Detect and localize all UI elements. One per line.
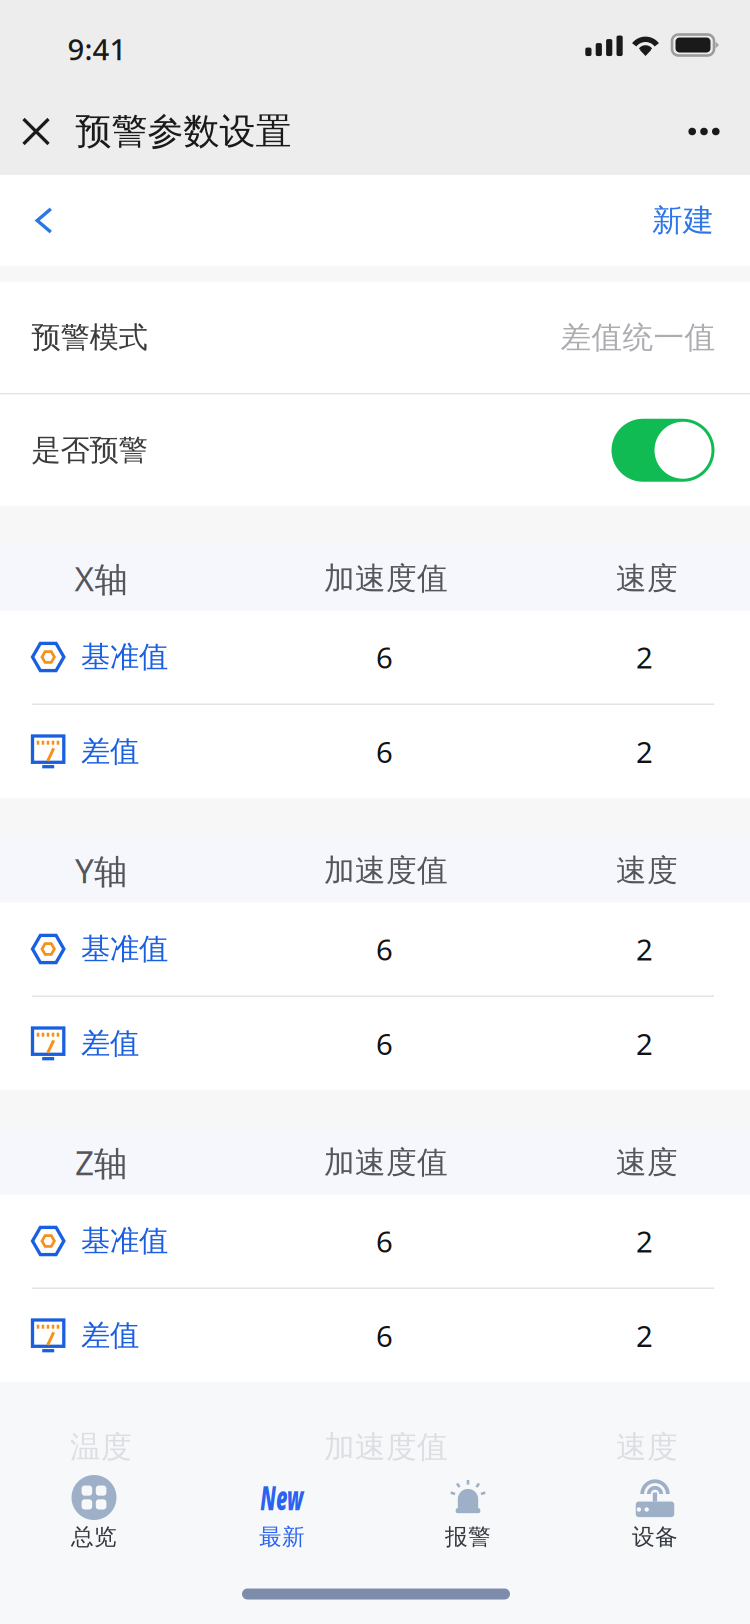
staticText: 2 [636,1316,653,1355]
staticText: 加速度值 [324,560,448,597]
staticText: 基准值 [81,931,168,967]
staticText: 总览 [71,1523,117,1551]
staticText: 2 [636,1024,653,1063]
staticText: 2 [636,732,653,771]
staticText: 速度 [616,560,678,597]
staticText: 最新 [259,1523,305,1551]
button[interactable]: 差值 [0,705,750,798]
staticText: 新建 [652,202,714,239]
staticText: 预警模式 [31,319,147,355]
staticText: 6 [376,637,393,676]
staticText: 加速度值 [324,1428,448,1466]
staticText: 加速度值 [324,1144,448,1181]
staticText: 速度 [616,1144,678,1181]
button[interactable]: 差值 [0,997,750,1090]
staticText: 设备 [632,1523,678,1551]
staticText: 差值 [81,1025,139,1061]
staticText: 9:41 [67,29,126,68]
staticText: 2 [636,637,653,676]
staticText: 基准值 [81,639,168,675]
button[interactable]: 新建 [623,175,743,266]
button[interactable]: 更多 [649,88,750,175]
button[interactable]: 是否预警开关 [611,419,714,482]
button[interactable]: 基准值 [0,1194,750,1287]
button[interactable]: 关闭 [0,88,74,175]
staticText: 2 [636,1221,653,1260]
staticText: 6 [376,1221,393,1260]
staticText: 是否预警 [31,432,147,468]
button[interactable]: 预警模式 [0,282,750,393]
button[interactable]: 设备 [561,1467,748,1559]
staticText: 6 [376,1316,393,1355]
staticText: 6 [376,929,393,968]
staticText: New [258,1483,305,1512]
button[interactable]: 基准值 [0,902,750,995]
button[interactable]: 报警 [374,1467,561,1559]
staticText: 6 [376,732,393,771]
staticText: 报警 [445,1523,491,1551]
staticText: 速度 [616,852,678,889]
button[interactable]: 返回 [0,175,88,266]
button[interactable]: 基准值 [0,610,750,703]
staticText: Y轴 [75,848,127,893]
staticText: Z轴 [75,1140,127,1185]
staticText: 2 [636,929,653,968]
staticText: 加速度值 [324,852,448,889]
staticText: 预警参数设置 [75,109,291,154]
staticText: 温度 [70,1428,132,1466]
staticText: 6 [376,1024,393,1063]
button[interactable]: 总览 [0,1467,187,1559]
staticText: 速度 [616,1428,678,1466]
staticText: 差值统一值 [560,319,715,356]
staticText: 差值 [81,733,139,769]
button[interactable]: New [188,1467,375,1559]
staticText: 差值 [81,1317,139,1353]
staticText: 基准值 [81,1223,168,1259]
staticText: X轴 [74,556,127,601]
button[interactable]: 差值 [0,1289,750,1382]
